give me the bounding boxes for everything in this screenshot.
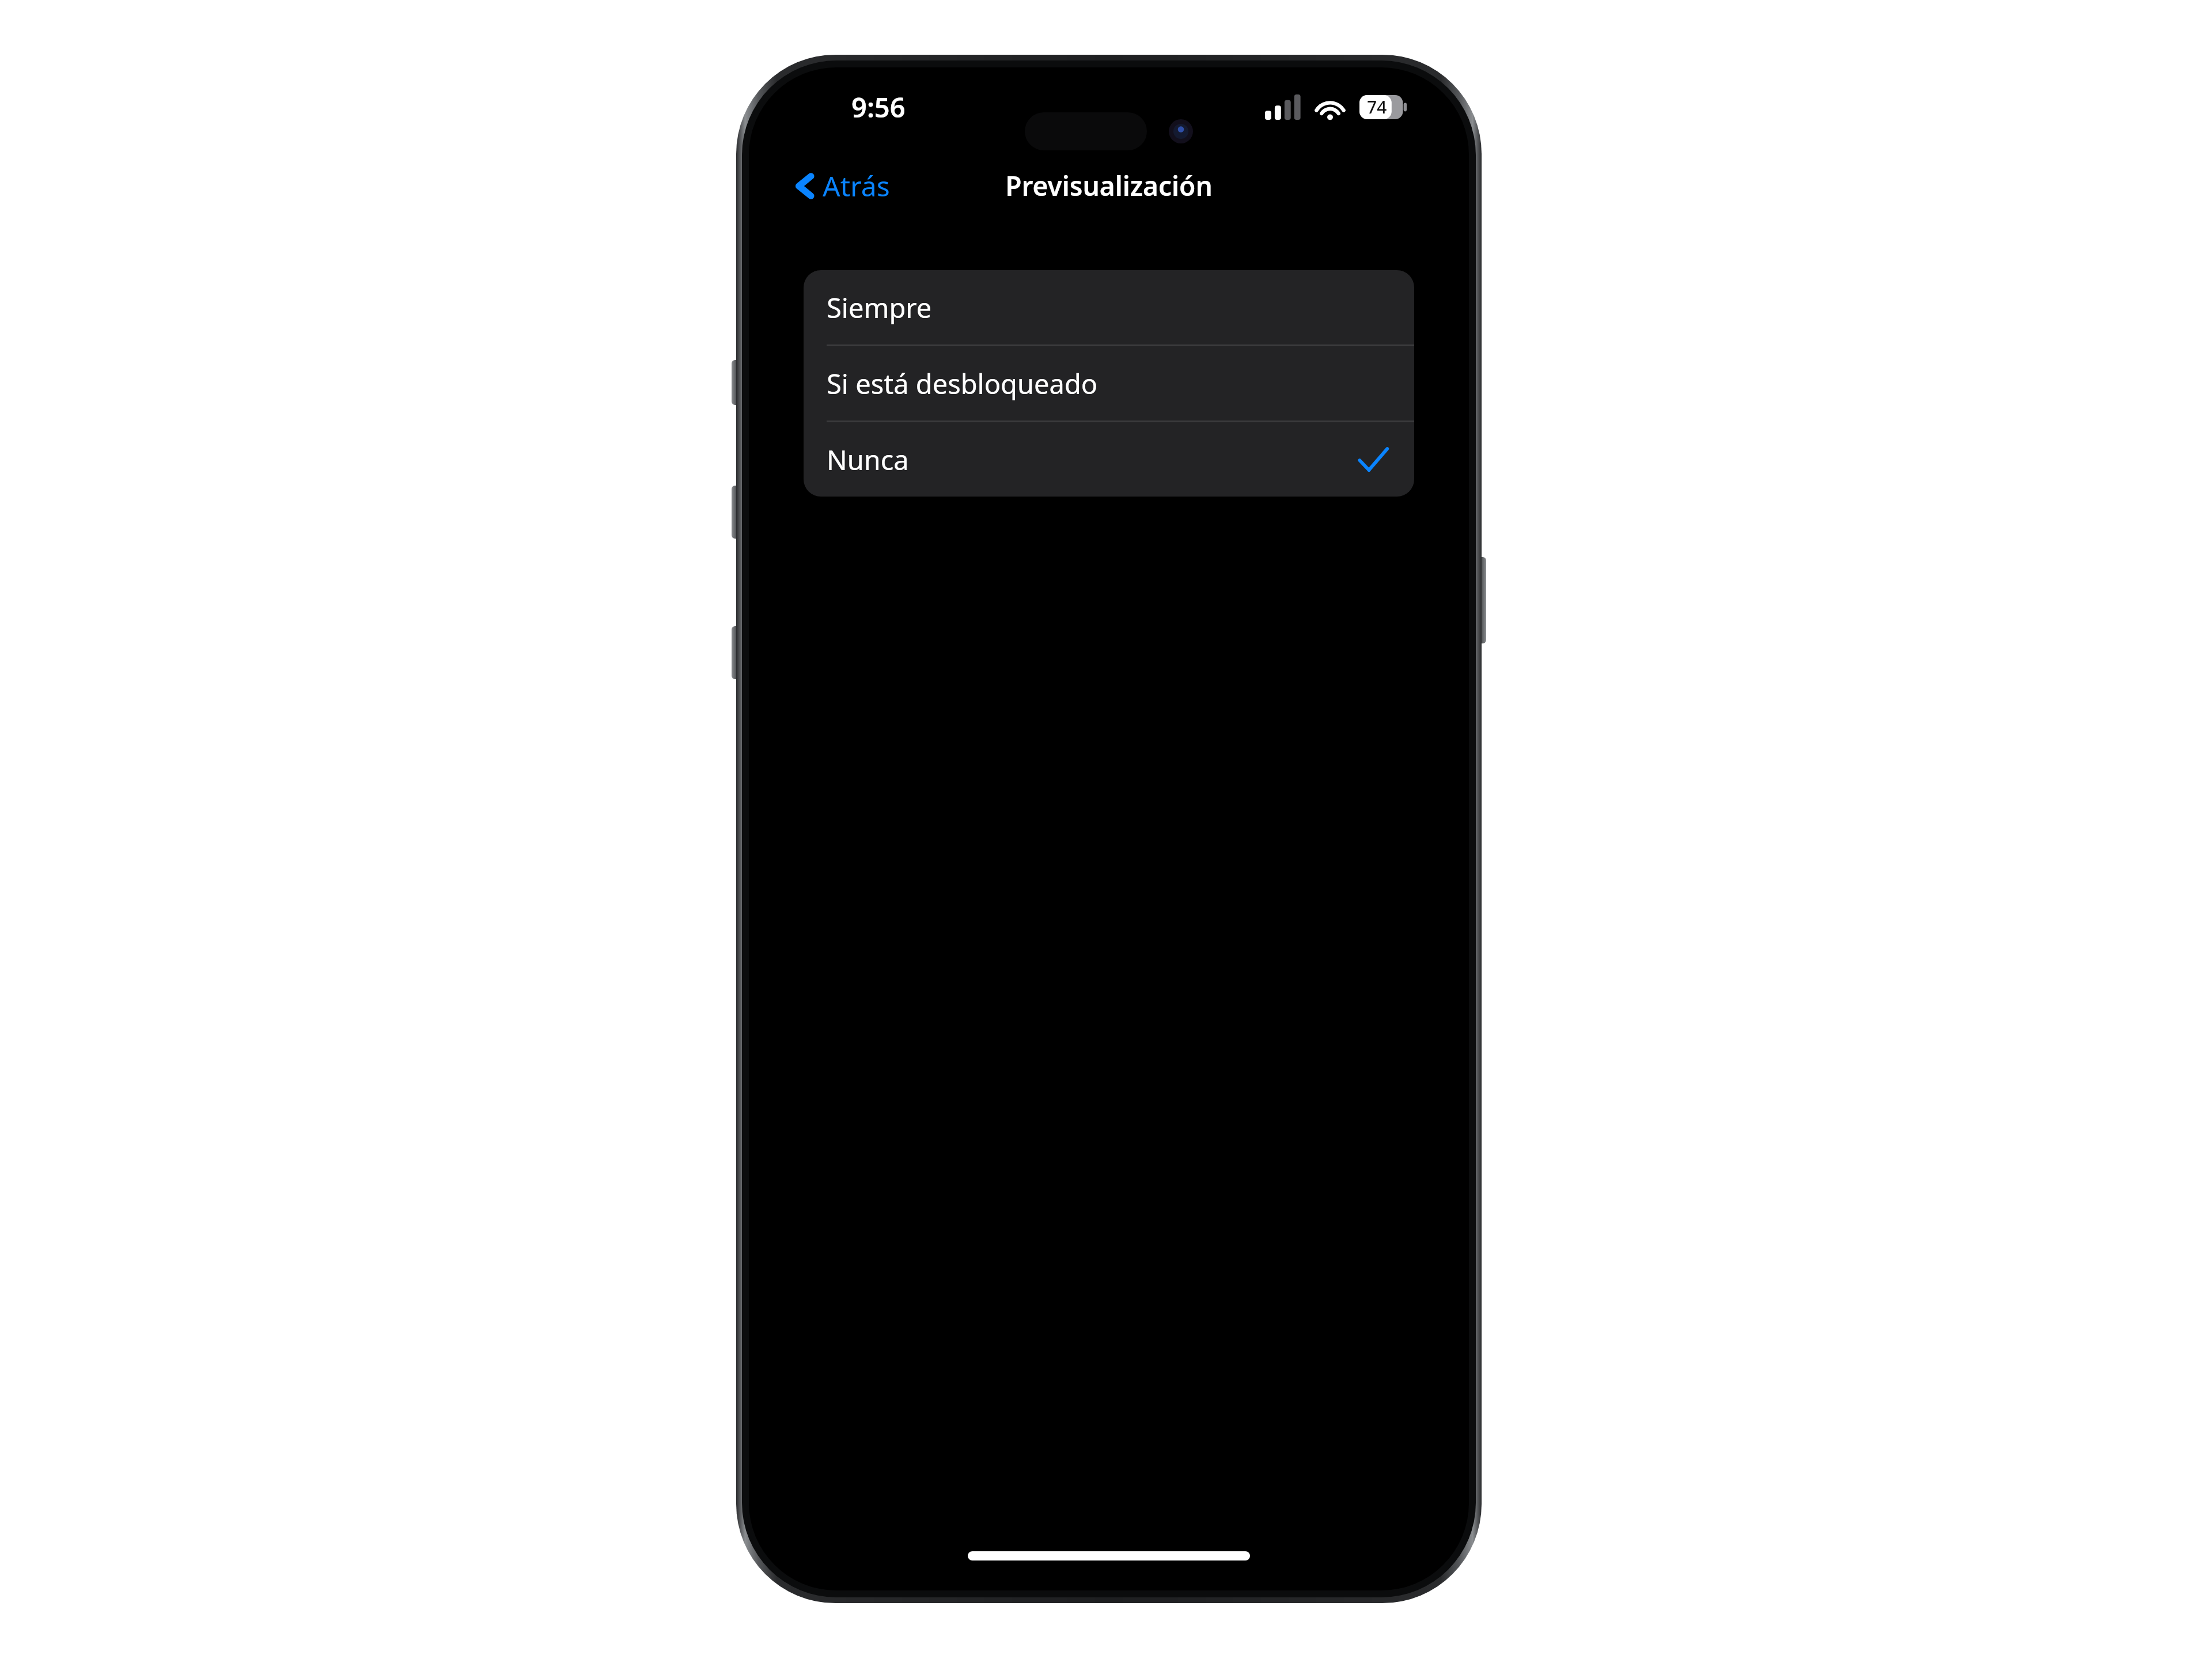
button[interactable]: Si está desbloqueado (804, 346, 1414, 422)
button[interactable]: Atrás (790, 162, 896, 209)
other: Volume down (732, 626, 740, 679)
other: Wi-Fi (1313, 94, 1347, 120)
other: Power (1478, 557, 1486, 643)
other: Cellular signal (1265, 94, 1301, 120)
staticText: Si está desbloqueado (827, 365, 1098, 402)
other: Volume up (732, 486, 740, 539)
other: Battery 74 percent (1359, 95, 1407, 119)
staticText: 74 (1367, 95, 1387, 119)
button[interactable]: Siempre (804, 270, 1414, 346)
staticText: 9:56 (851, 89, 906, 126)
staticText: Nunca (827, 441, 909, 478)
staticText: Siempre (827, 289, 932, 326)
button[interactable]: Nunca (804, 422, 1414, 497)
staticText: Atrás (823, 167, 890, 204)
other: Action button (732, 360, 740, 405)
staticText: Previsualización (1005, 168, 1213, 204)
